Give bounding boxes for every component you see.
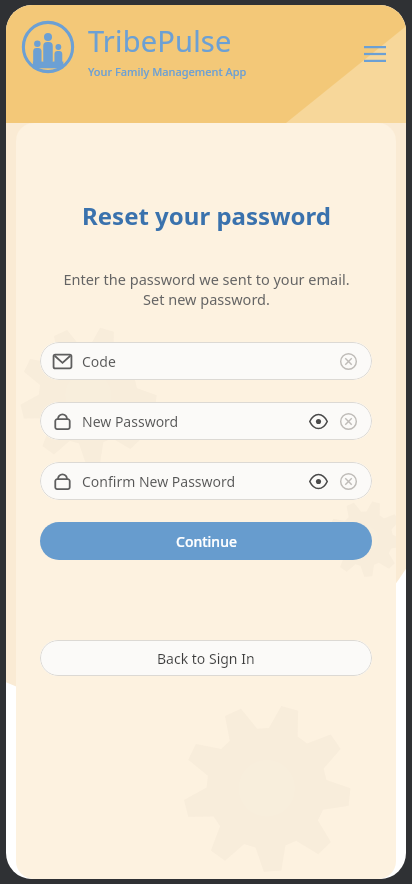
staticText: Your Family Management App [88,64,247,79]
staticText: Confirm New Password [82,472,236,491]
staticText: Enter the password we sent to your email… [63,269,350,310]
button[interactable]: New Password [40,402,372,440]
button[interactable]: Clear Confirm New Password [337,470,359,492]
button[interactable]: Show password [307,410,329,432]
button[interactable]: Clear Code [337,350,359,372]
button[interactable]: Confirm New Password [40,462,372,500]
button[interactable]: Continue [40,522,372,560]
staticText: Continue [176,532,237,551]
staticText: New Password [82,412,179,431]
staticText: Reset your password [82,199,331,232]
button[interactable]: Open menu [358,37,392,71]
staticText: TribePulse [88,21,232,60]
staticText: Back to Sign In [157,649,255,668]
staticText: Code [82,352,116,371]
button[interactable]: Clear New Password [337,410,359,432]
button[interactable]: Back to Sign In [40,640,372,676]
button[interactable]: Code [40,342,372,380]
button[interactable]: Show password [307,470,329,492]
